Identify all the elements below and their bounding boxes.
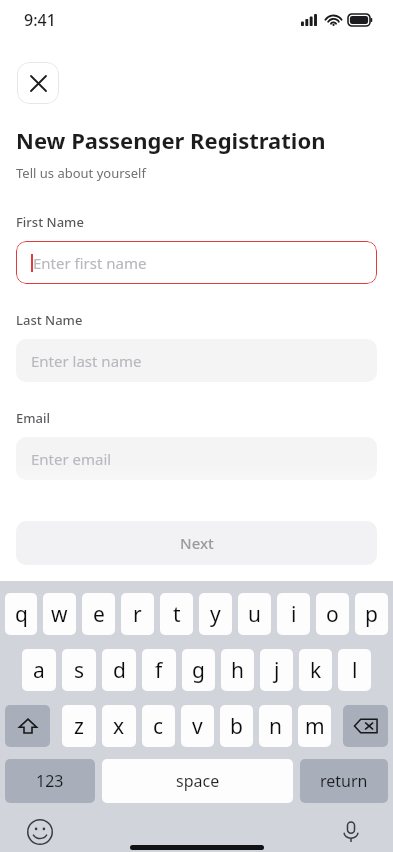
staticText: f xyxy=(155,656,163,685)
staticText: t xyxy=(173,600,181,629)
button[interactable]: h xyxy=(221,649,254,691)
staticText: n xyxy=(269,712,282,741)
button[interactable]: Backspace xyxy=(343,705,388,747)
staticText: a xyxy=(33,656,45,685)
button[interactable]: Dictation xyxy=(335,816,367,848)
staticText: j xyxy=(274,656,280,685)
button[interactable]: return xyxy=(300,759,388,803)
button[interactable]: j xyxy=(260,649,293,691)
button[interactable]: a xyxy=(22,649,56,691)
staticText: p xyxy=(365,600,378,629)
button[interactable]: y xyxy=(199,593,232,635)
staticText: g xyxy=(192,656,205,685)
staticText: space xyxy=(176,770,220,792)
staticText: Email xyxy=(16,409,51,427)
button[interactable]: g xyxy=(182,649,215,691)
staticText: x xyxy=(113,712,125,741)
button[interactable]: Next xyxy=(16,521,377,565)
staticText: Enter first name xyxy=(33,253,147,273)
button[interactable]: f xyxy=(142,649,176,691)
button[interactable]: space xyxy=(102,759,293,803)
button[interactable]: e xyxy=(82,593,115,635)
button[interactable]: n xyxy=(259,705,292,747)
button[interactable]: k xyxy=(299,649,332,691)
button[interactable]: t xyxy=(160,593,193,635)
staticText: o xyxy=(326,600,339,629)
staticText: r xyxy=(133,600,142,629)
button[interactable]: Enter first name xyxy=(16,241,377,284)
staticText: First Name xyxy=(16,213,84,231)
staticText: e xyxy=(93,600,105,629)
staticText: u xyxy=(248,600,261,629)
staticText: Last Name xyxy=(16,311,83,329)
staticText: 123 xyxy=(36,770,64,792)
staticText: c xyxy=(153,712,164,741)
button[interactable]: o xyxy=(316,593,349,635)
staticText: l xyxy=(352,656,358,685)
staticText: 9:41 xyxy=(24,9,56,31)
staticText: New Passenger Registration xyxy=(16,125,326,155)
button[interactable]: Shift xyxy=(5,705,50,747)
staticText: y xyxy=(210,600,221,629)
button[interactable]: v xyxy=(181,705,214,747)
button[interactable]: d xyxy=(102,649,136,691)
staticText: i xyxy=(291,600,297,629)
button[interactable]: x xyxy=(102,705,136,747)
staticText: v xyxy=(192,712,203,741)
staticText: return xyxy=(320,770,368,792)
staticText: Enter email xyxy=(31,449,112,469)
staticText: Next xyxy=(180,533,214,553)
button[interactable]: Close xyxy=(17,62,59,104)
staticText: d xyxy=(113,656,126,685)
button[interactable]: l xyxy=(338,649,371,691)
button[interactable]: i xyxy=(277,593,310,635)
button[interactable]: m xyxy=(298,705,331,747)
staticText: b xyxy=(230,712,243,741)
button[interactable]: Enter email xyxy=(16,437,377,480)
staticText: z xyxy=(74,712,84,741)
staticText: s xyxy=(74,656,85,685)
button[interactable]: p xyxy=(355,593,388,635)
staticText: Enter last name xyxy=(31,351,142,371)
staticText: Tell us about yourself xyxy=(16,164,146,182)
staticText: w xyxy=(51,600,68,629)
staticText: q xyxy=(15,600,28,629)
button[interactable]: Emoji xyxy=(24,816,56,848)
button[interactable]: 123 xyxy=(5,759,95,803)
button[interactable]: Enter last name xyxy=(16,339,377,382)
button[interactable]: w xyxy=(43,593,76,635)
button[interactable]: z xyxy=(62,705,96,747)
button[interactable]: u xyxy=(238,593,271,635)
button[interactable]: s xyxy=(62,649,96,691)
button[interactable]: r xyxy=(121,593,154,635)
button[interactable]: b xyxy=(220,705,253,747)
staticText: k xyxy=(310,656,322,685)
button[interactable]: c xyxy=(142,705,175,747)
staticText: h xyxy=(231,656,244,685)
staticText: m xyxy=(305,712,325,741)
button[interactable]: q xyxy=(5,593,37,635)
